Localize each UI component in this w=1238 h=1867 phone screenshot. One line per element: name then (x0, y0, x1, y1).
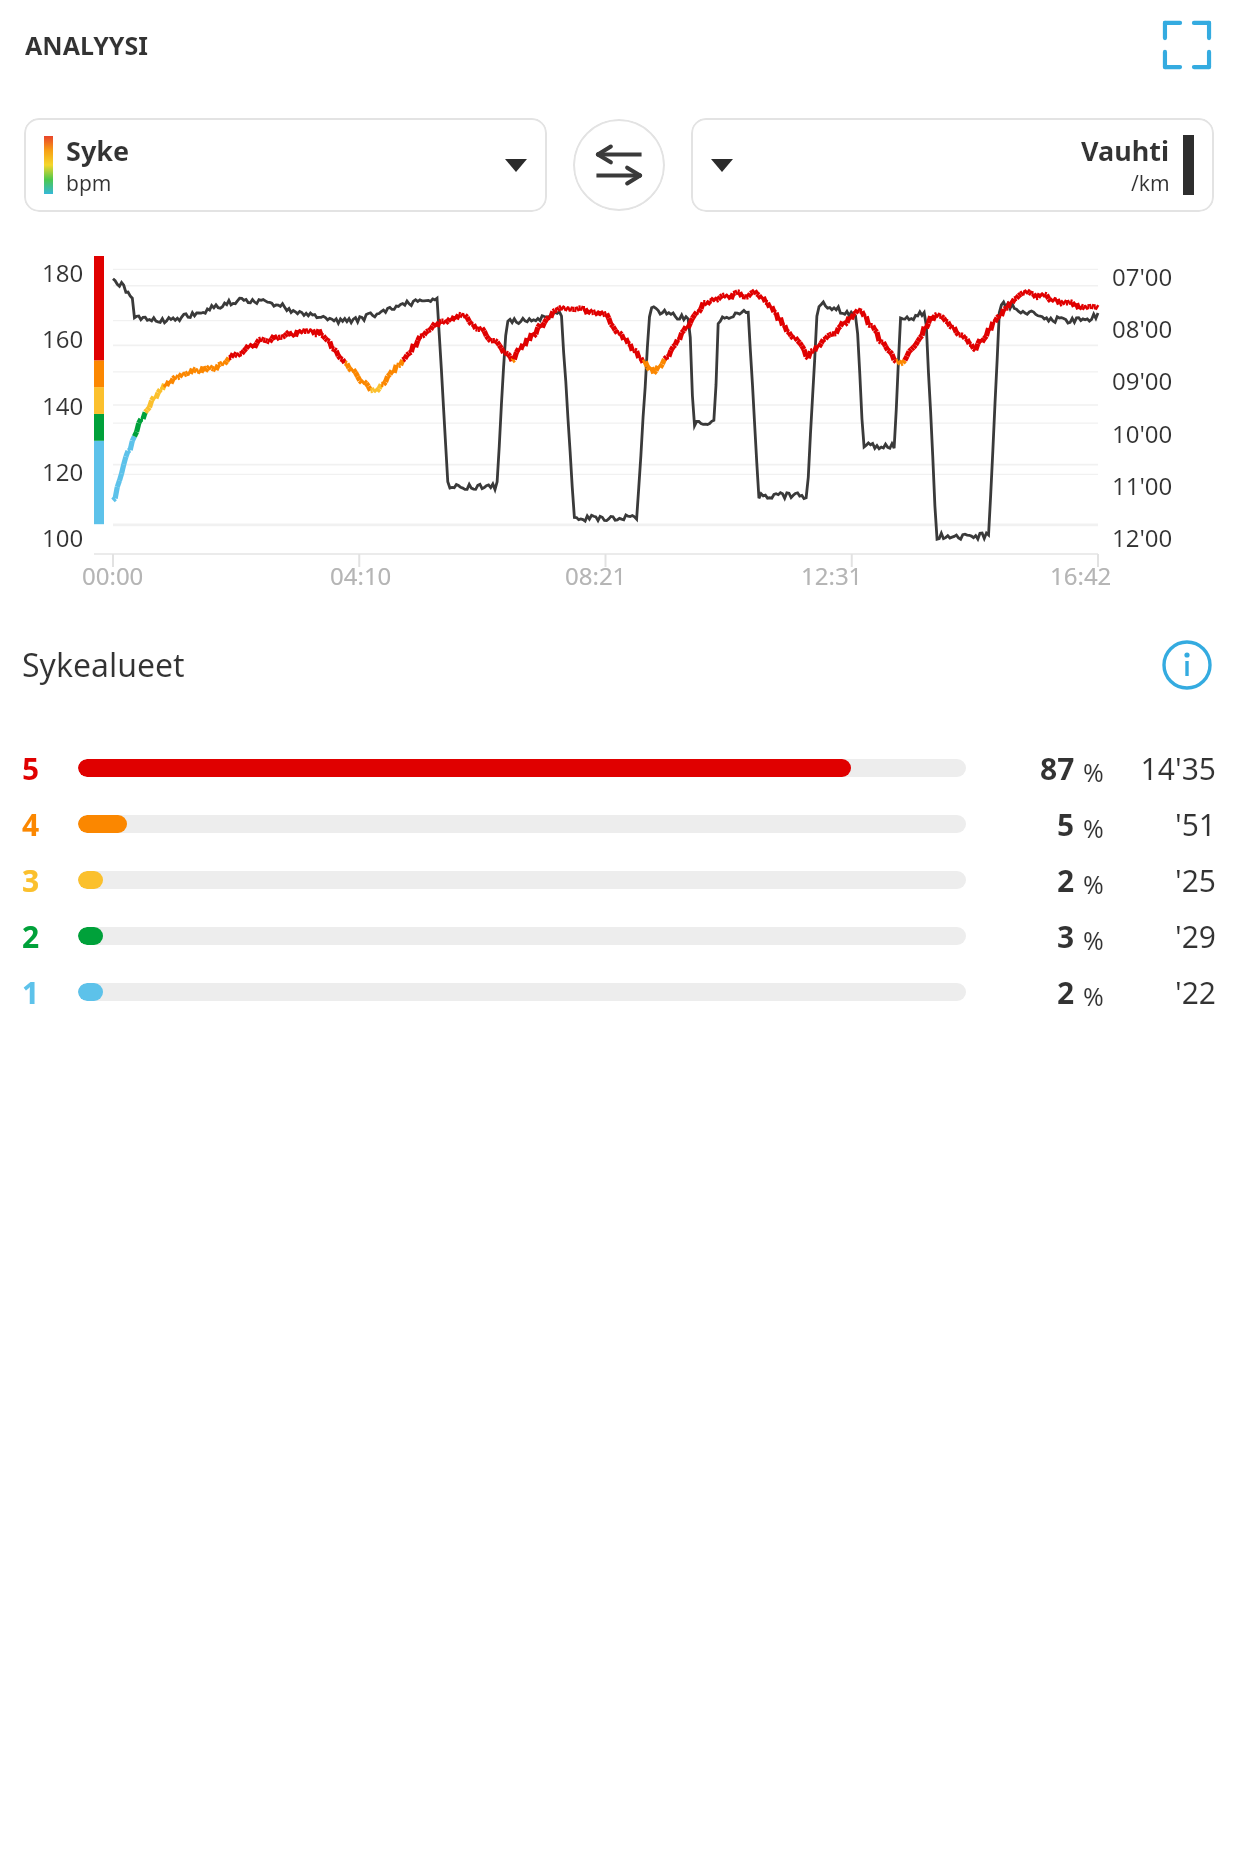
staticText: 4 (22, 804, 58, 845)
staticText: 10'00 (1112, 417, 1173, 450)
staticText: 2 (1057, 860, 1075, 901)
staticText: 2 (1057, 972, 1075, 1013)
staticText: 87 (1040, 748, 1075, 789)
staticText: Sykealueet (22, 643, 185, 687)
staticText: 100 (42, 521, 84, 554)
staticText: 140 (42, 389, 84, 422)
staticText: '51 (1104, 804, 1216, 845)
staticText: Syke (66, 132, 130, 169)
staticText: 14'35 (1104, 748, 1216, 789)
staticText: % (1083, 867, 1104, 901)
staticText: 180 (42, 256, 84, 289)
staticText: Vauhti (1081, 132, 1170, 169)
staticText: 5 (22, 748, 58, 789)
staticText: bpm (66, 169, 112, 198)
button[interactable]: Heart rate zones info (1158, 636, 1216, 694)
staticText: 12'00 (1112, 521, 1173, 554)
staticText: '29 (1104, 916, 1216, 957)
button[interactable]: Vauhti (691, 118, 1214, 212)
staticText: '22 (1104, 972, 1216, 1013)
staticText: % (1083, 923, 1104, 957)
staticText: 160 (42, 322, 84, 355)
button[interactable]: 5 (22, 740, 1216, 796)
button[interactable]: Full screen (1158, 16, 1216, 74)
staticText: 16:42 (1050, 559, 1112, 592)
staticText: % (1083, 811, 1104, 845)
staticText: 3 (1057, 916, 1075, 957)
staticText: 00:00 (82, 559, 144, 592)
button[interactable]: 1 (22, 964, 1216, 1020)
staticText: 5 (1057, 804, 1075, 845)
staticText: 09'00 (1112, 364, 1173, 397)
staticText: 07'00 (1112, 260, 1173, 293)
staticText: 11'00 (1112, 469, 1173, 502)
staticText: 08:21 (565, 559, 627, 592)
staticText: 04:10 (330, 559, 392, 592)
button[interactable]: 3 (22, 852, 1216, 908)
staticText: '25 (1104, 860, 1216, 901)
button[interactable]: 2 (22, 908, 1216, 964)
staticText: % (1083, 755, 1104, 789)
staticText: 120 (42, 455, 84, 488)
staticText: /km (1131, 169, 1170, 198)
staticText: % (1083, 979, 1104, 1013)
staticText: ANALYYSI (25, 28, 148, 62)
staticText: 1 (22, 972, 58, 1013)
staticText: 3 (22, 860, 58, 901)
staticText: 2 (22, 916, 58, 957)
button[interactable]: 4 (22, 796, 1216, 852)
button[interactable]: Swap series (573, 119, 665, 211)
button[interactable]: Syke (24, 118, 547, 212)
staticText: 12:31 (801, 559, 863, 592)
staticText: 08'00 (1112, 312, 1173, 345)
